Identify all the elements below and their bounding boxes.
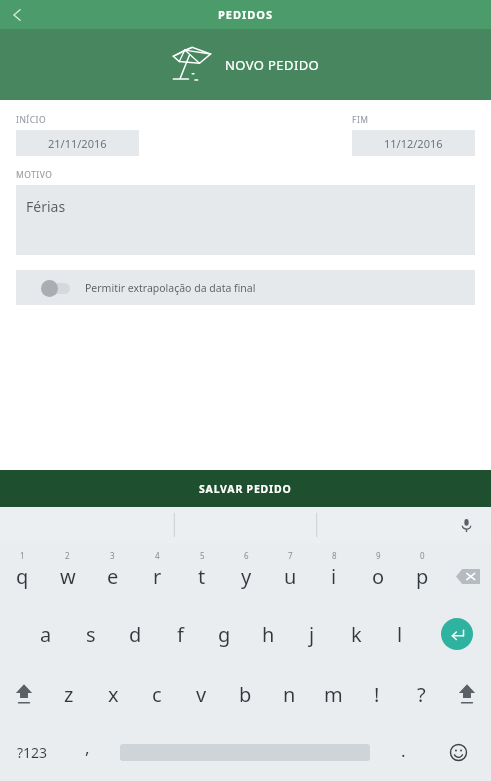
button[interactable]: 6: [224, 543, 268, 603]
staticText: s: [86, 621, 96, 648]
button[interactable]: h: [246, 603, 290, 665]
button[interactable]: Férias: [16, 185, 475, 255]
button[interactable]: 11/12/2016: [352, 130, 475, 156]
staticText: 9: [376, 550, 381, 561]
button[interactable]: 5: [180, 543, 224, 603]
staticText: p: [416, 563, 429, 590]
button[interactable]: k: [334, 603, 378, 665]
staticText: Férias: [26, 197, 66, 216]
staticText: g: [218, 621, 231, 648]
button[interactable]: v: [179, 665, 223, 723]
staticText: 8: [332, 550, 337, 561]
button[interactable]: a: [23, 603, 68, 665]
staticText: w: [60, 563, 76, 590]
button[interactable]: 8: [312, 543, 356, 603]
staticText: j: [309, 621, 315, 648]
button[interactable]: m: [311, 665, 355, 723]
staticText: .: [401, 739, 406, 762]
button[interactable]: Back: [0, 0, 34, 29]
button[interactable]: 3: [90, 543, 135, 603]
button[interactable]: Backspace: [444, 543, 491, 603]
staticText: MOTIVO: [16, 169, 53, 181]
button[interactable]: Space: [109, 723, 381, 781]
button[interactable]: 0: [400, 543, 444, 603]
staticText: q: [16, 563, 29, 590]
button[interactable]: Shift: [443, 665, 491, 723]
staticText: r: [153, 563, 162, 590]
staticText: z: [64, 681, 74, 708]
staticText: 6: [244, 550, 249, 561]
staticText: 0: [420, 550, 425, 561]
staticText: y: [241, 563, 252, 590]
button[interactable]: NOVO PEDIDO: [0, 29, 491, 100]
button[interactable]: s: [68, 603, 113, 665]
staticText: t: [198, 563, 206, 590]
staticText: 7: [288, 550, 293, 561]
button[interactable]: x: [91, 665, 135, 723]
button[interactable]: c: [135, 665, 179, 723]
staticText: x: [108, 681, 119, 708]
button[interactable]: !: [355, 665, 399, 723]
staticText: c: [152, 681, 162, 708]
button[interactable]: 2: [45, 543, 90, 603]
staticText: i: [331, 563, 337, 590]
staticText: a: [40, 621, 52, 648]
button[interactable]: ,: [65, 723, 109, 781]
staticText: d: [129, 621, 142, 648]
staticText: 2: [65, 550, 70, 561]
button[interactable]: b: [223, 665, 267, 723]
staticText: k: [351, 621, 362, 648]
staticText: b: [239, 681, 252, 708]
staticText: m: [324, 681, 343, 708]
button[interactable]: ?: [399, 665, 443, 723]
button[interactable]: g: [202, 603, 246, 665]
button[interactable]: 9: [356, 543, 400, 603]
button[interactable]: d: [113, 603, 158, 665]
staticText: 4: [155, 550, 160, 561]
staticText: SALVAR PEDIDO: [199, 482, 292, 496]
staticText: h: [262, 621, 275, 648]
button[interactable]: Emoji: [425, 723, 491, 781]
staticText: u: [284, 563, 297, 590]
button[interactable]: 21/11/2016: [16, 130, 139, 156]
button[interactable]: f: [158, 603, 202, 665]
staticText: e: [107, 563, 119, 590]
staticText: PEDIDOS: [218, 7, 274, 22]
button[interactable]: 4: [135, 543, 180, 603]
button[interactable]: Shift: [0, 665, 47, 723]
button[interactable]: z: [47, 665, 91, 723]
button[interactable]: j: [290, 603, 334, 665]
button[interactable]: ?123: [0, 723, 65, 781]
staticText: ?123: [17, 743, 48, 762]
staticText: 3: [110, 550, 115, 561]
button[interactable]: SALVAR PEDIDO: [0, 470, 491, 507]
staticText: o: [372, 563, 385, 590]
staticText: 1: [20, 550, 25, 561]
button[interactable]: .: [381, 723, 425, 781]
staticText: !: [374, 681, 380, 708]
staticText: ,: [85, 736, 90, 759]
button[interactable]: Permitir extrapolação da data final: [16, 270, 475, 305]
button[interactable]: l: [378, 603, 422, 665]
staticText: 21/11/2016: [48, 136, 107, 151]
staticText: l: [397, 621, 403, 648]
staticText: v: [196, 681, 207, 708]
button[interactable]: n: [267, 665, 311, 723]
staticText: 11/12/2016: [384, 136, 443, 151]
staticText: Permitir extrapolação da data final: [85, 281, 256, 295]
staticText: FIM: [352, 114, 475, 126]
button[interactable]: 1: [0, 543, 45, 603]
staticText: 5: [200, 550, 205, 561]
staticText: f: [177, 621, 184, 648]
button[interactable]: Enter: [422, 603, 491, 665]
button[interactable]: 7: [268, 543, 312, 603]
staticText: INÍCIO: [16, 114, 47, 126]
button[interactable]: Voice input: [453, 512, 479, 538]
staticText: n: [283, 681, 296, 708]
staticText: ?: [417, 681, 426, 708]
staticText: NOVO PEDIDO: [225, 56, 320, 74]
